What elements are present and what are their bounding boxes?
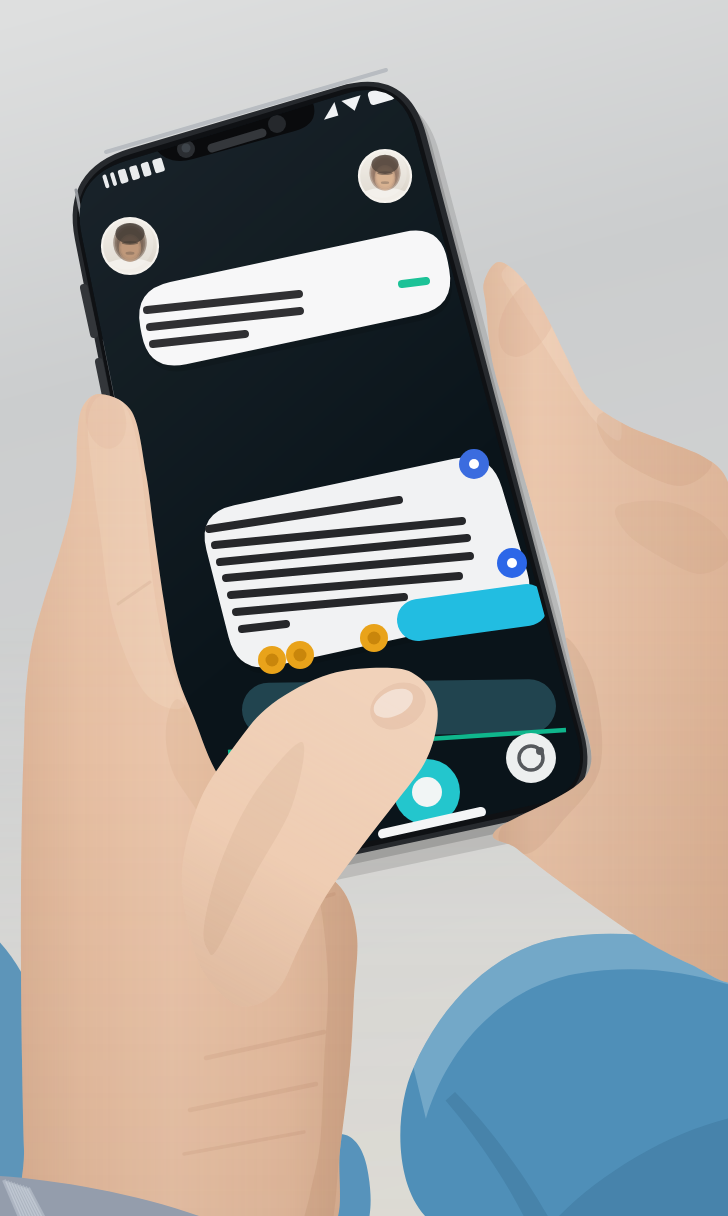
button[interactable]: Hands holding a phone showing a chat con… (0, 0, 728, 1216)
